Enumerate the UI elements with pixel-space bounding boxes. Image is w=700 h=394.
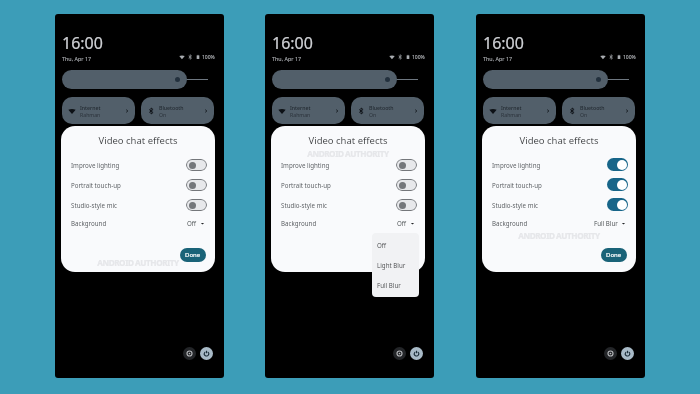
button[interactable]: Power (621, 347, 634, 360)
button[interactable]: Internet (62, 97, 135, 124)
staticText: 16:00 (483, 32, 524, 54)
button[interactable]: Light Blur (372, 255, 419, 275)
button[interactable]: Internet (483, 97, 556, 124)
staticText: Video chat effects (61, 134, 215, 147)
staticText: Off (377, 241, 387, 249)
staticText: 100% (623, 54, 636, 61)
staticText: ANDROID AUTHORITY (61, 257, 215, 268)
button[interactable]: Improve lighting (482, 157, 636, 173)
staticText: Studio-style mic (281, 201, 327, 209)
button[interactable]: Done (601, 248, 627, 262)
button[interactable]: Full Blur (372, 275, 419, 295)
button[interactable]: Studio-style mic (61, 197, 215, 213)
staticText: Bluetooth (369, 104, 394, 111)
staticText: Bluetooth (580, 104, 605, 111)
staticText: Off (397, 219, 407, 227)
staticText: Improve lighting (71, 161, 120, 169)
staticText: On (159, 111, 167, 118)
button[interactable]: Studio-style mic (482, 197, 636, 213)
staticText: Rahman (80, 111, 101, 118)
button[interactable]: Internet (272, 97, 345, 124)
staticText: Improve lighting (281, 161, 330, 169)
button[interactable]: Done (180, 248, 206, 262)
staticText: Done (606, 251, 622, 259)
staticText: Internet (80, 104, 101, 111)
staticText: Portrait touch-up (492, 181, 542, 189)
staticText: Rahman (290, 111, 311, 118)
staticText: Portrait touch-up (71, 181, 121, 189)
staticText: Studio-style mic (71, 201, 117, 209)
staticText: Video chat effects (271, 134, 425, 147)
staticText: Off (187, 219, 197, 227)
button[interactable]: Power (200, 347, 213, 360)
staticText: Studio-style mic (492, 201, 538, 209)
button[interactable]: Settings (604, 347, 617, 360)
staticText: Bluetooth (159, 104, 184, 111)
button[interactable] (272, 70, 397, 89)
button[interactable]: Settings (393, 347, 406, 360)
staticText: 16:00 (272, 32, 313, 54)
button[interactable]: Bluetooth (562, 97, 635, 124)
staticText: Background (71, 219, 107, 227)
staticText: Thu, Apr 17 (272, 55, 302, 62)
staticText: Thu, Apr 17 (62, 55, 92, 62)
staticText: Done (185, 251, 201, 259)
staticText: ANDROID AUTHORITY (482, 230, 636, 241)
button[interactable]: Bluetooth (351, 97, 424, 124)
staticText: 100% (412, 54, 425, 61)
staticText: Improve lighting (492, 161, 541, 169)
button[interactable]: Background (61, 216, 215, 230)
staticText: On (580, 111, 588, 118)
staticText: On (369, 111, 377, 118)
button[interactable]: Improve lighting (61, 157, 215, 173)
staticText: Rahman (501, 111, 522, 118)
staticText: 100% (202, 54, 215, 61)
staticText: Internet (290, 104, 311, 111)
staticText: ANDROID AUTHORITY (271, 148, 425, 159)
button[interactable]: Portrait touch-up (482, 177, 636, 193)
button[interactable]: Portrait touch-up (271, 177, 425, 193)
button[interactable]: Bluetooth (141, 97, 214, 124)
staticText: 16:00 (62, 32, 103, 54)
staticText: Full Blur (594, 219, 618, 227)
staticText: Light Blur (377, 261, 406, 269)
staticText: Background (281, 219, 317, 227)
button[interactable] (62, 70, 187, 89)
button[interactable]: Off (372, 235, 419, 255)
staticText: Video chat effects (482, 134, 636, 147)
staticText: Portrait touch-up (281, 181, 331, 189)
button[interactable]: Power (410, 347, 423, 360)
staticText: Thu, Apr 17 (483, 55, 513, 62)
staticText: Full Blur (377, 281, 401, 289)
button[interactable]: Background (482, 216, 636, 230)
button[interactable] (483, 70, 608, 89)
button[interactable]: Portrait touch-up (61, 177, 215, 193)
button[interactable]: Studio-style mic (271, 197, 425, 213)
button[interactable]: Settings (183, 347, 196, 360)
staticText: Background (492, 219, 528, 227)
button[interactable]: Background (271, 216, 425, 230)
button[interactable]: Improve lighting (271, 157, 425, 173)
staticText: Internet (501, 104, 522, 111)
